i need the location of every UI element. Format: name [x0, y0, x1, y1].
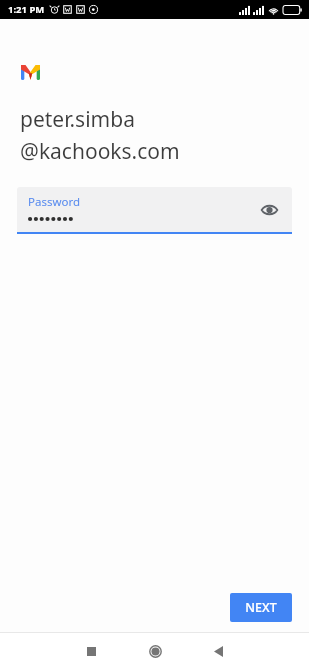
button[interactable]: Home [138, 634, 172, 668]
button[interactable]: Recents [74, 634, 108, 668]
staticText: @kachooks.com [20, 137, 180, 166]
staticText: peter.simba [20, 105, 135, 134]
button[interactable]: Show password [256, 197, 282, 223]
staticText: Password [28, 194, 81, 210]
staticText: 1:21 PM [8, 3, 45, 16]
button[interactable]: Password [17, 187, 292, 232]
staticText: NEXT [245, 599, 277, 616]
button[interactable]: Back [201, 634, 235, 668]
button[interactable]: NEXT [230, 593, 292, 622]
